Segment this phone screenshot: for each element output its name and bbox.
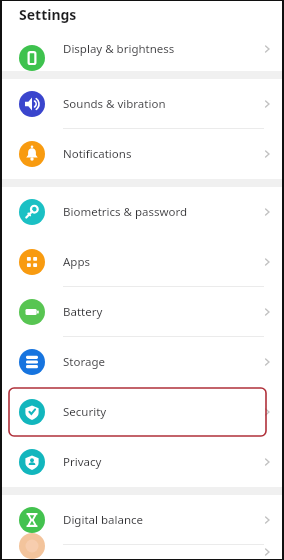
button[interactable]: Biometrics & password [2,187,282,237]
staticText: Display & brightness [63,41,252,57]
button[interactable]: Digital balance [2,495,282,545]
button[interactable]: Security [2,387,282,437]
staticText: Security [63,404,252,420]
staticText: Digital balance [63,512,252,528]
staticText: Battery [63,304,252,320]
button[interactable]: Notifications [2,129,282,179]
button[interactable]: More settings [2,545,282,559]
button[interactable]: Apps [2,237,282,287]
button[interactable]: Storage [2,337,282,387]
staticText: Privacy [63,454,252,470]
staticText: Settings [19,5,77,24]
staticText: Biometrics & password [63,204,252,220]
button[interactable]: Privacy [2,437,282,487]
staticText: Storage [63,354,252,370]
button[interactable]: Battery [2,287,282,337]
staticText: Apps [63,254,252,270]
staticText: Sounds & vibration [63,96,252,112]
staticText: Notifications [63,146,252,162]
button[interactable]: Display & brightness [2,27,282,71]
button[interactable]: Sounds & vibration [2,79,282,129]
